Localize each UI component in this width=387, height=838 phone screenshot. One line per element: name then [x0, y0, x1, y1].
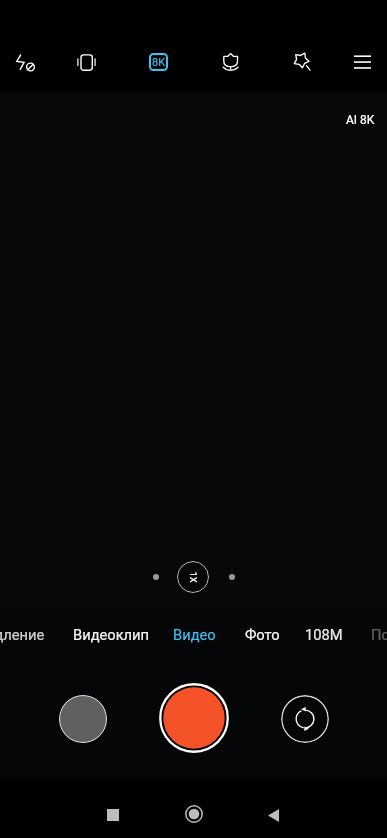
staticText: Портрет — [371, 626, 387, 643]
button[interactable]: Flash off — [2, 39, 48, 85]
button[interactable]: Menu — [339, 39, 385, 85]
button[interactable]: Фото — [236, 620, 289, 648]
button[interactable]: Home — [172, 792, 216, 836]
staticText: Видеоклип — [73, 626, 150, 643]
button[interactable]: 108M — [296, 620, 352, 648]
button[interactable]: Vibration — [63, 39, 109, 85]
staticText: 1X — [187, 571, 198, 583]
button[interactable]: Filters — [278, 39, 324, 85]
button[interactable]: Портрет — [362, 620, 387, 648]
button[interactable]: Zoom out — [140, 561, 172, 593]
staticText: 8K — [152, 56, 166, 69]
staticText: 108M — [305, 626, 343, 643]
button[interactable]: Record — [158, 682, 230, 754]
button[interactable]: Zoom 1x — [177, 561, 209, 593]
button[interactable]: Zoom in — [216, 561, 248, 593]
button[interactable]: Back — [251, 793, 295, 837]
staticText: Замедление — [0, 626, 45, 643]
staticText: Фото — [245, 626, 280, 643]
button[interactable]: Switch camera — [281, 695, 329, 743]
staticText: AI 8K — [346, 113, 375, 127]
staticText: Видео — [173, 626, 216, 643]
button[interactable]: 8K video — [135, 39, 181, 85]
button[interactable]: Recents — [91, 793, 135, 837]
button[interactable]: Замедление — [0, 620, 54, 648]
button[interactable]: Видео — [164, 620, 225, 648]
button[interactable]: Macro — [207, 39, 253, 85]
button[interactable]: Gallery — [59, 695, 107, 743]
button[interactable]: Видеоклип — [64, 620, 159, 648]
